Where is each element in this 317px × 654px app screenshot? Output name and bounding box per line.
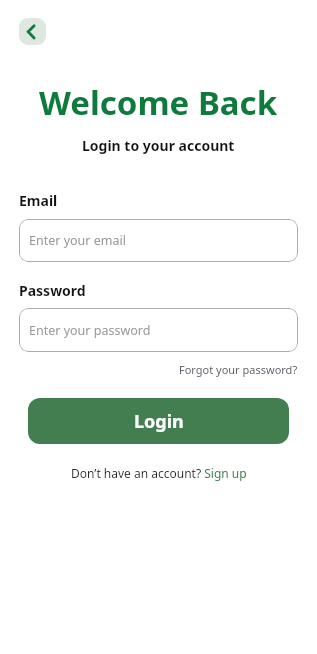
button[interactable]: Forgot your password? (179, 362, 298, 377)
staticText: Enter your password (29, 322, 151, 339)
staticText: Welcome Back (39, 80, 278, 125)
button[interactable]: Login (28, 398, 289, 444)
staticText: Login (134, 409, 184, 434)
staticText: Enter your email (29, 232, 126, 249)
staticText: Login to your account (82, 136, 235, 155)
staticText: Email (19, 191, 58, 210)
button[interactable]: Don’t have an account? Sign up (71, 465, 247, 481)
staticText: Password (19, 281, 86, 300)
button[interactable]: Enter your email (19, 219, 298, 262)
button[interactable] (19, 18, 46, 45)
button[interactable]: Enter your password (19, 308, 298, 352)
